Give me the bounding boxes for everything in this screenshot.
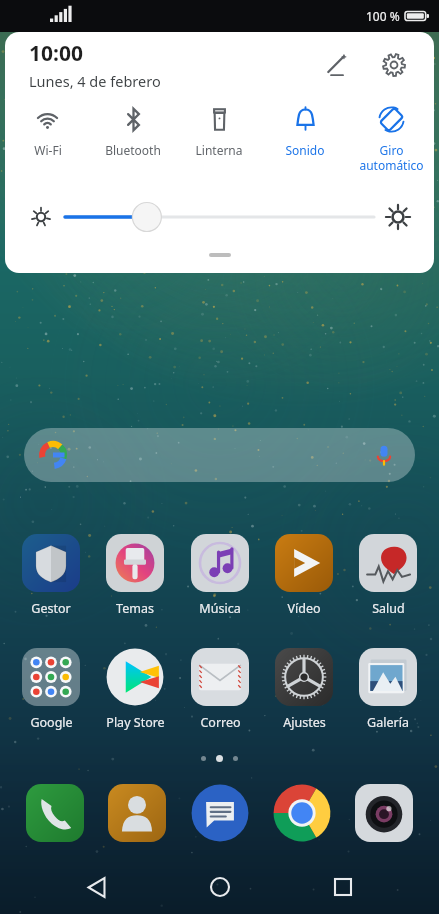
staticText: Google	[30, 714, 73, 731]
staticText: Wi-Fi	[34, 142, 62, 158]
staticText: Linterna	[195, 142, 243, 158]
button[interactable]: Teléfono	[22, 780, 88, 846]
staticText: Salud	[372, 600, 405, 617]
button[interactable]: Chrome	[269, 780, 335, 846]
button[interactable]: Música	[181, 532, 259, 619]
button[interactable]: Gestor	[12, 532, 90, 619]
staticText: Gestor	[31, 600, 71, 617]
staticText: Vídeo	[287, 600, 321, 617]
button[interactable]: Contactos	[104, 780, 170, 846]
staticText: 100 %	[366, 8, 400, 24]
staticText: Play Store	[106, 714, 165, 731]
button[interactable]: Brillo	[63, 197, 376, 237]
staticText: Ajustes	[283, 714, 326, 731]
button[interactable]: Inicio	[192, 860, 248, 914]
button[interactable]: Play Store	[96, 646, 174, 733]
staticText: Galería	[367, 714, 409, 731]
button[interactable]: Cámara	[351, 780, 417, 846]
button[interactable]: Salud	[349, 532, 427, 619]
button[interactable]: Wi-Fi	[5, 98, 90, 190]
button[interactable]: Correo	[181, 646, 259, 733]
button[interactable]: Mensajes	[187, 780, 253, 846]
staticText: Bluetooth	[105, 142, 161, 158]
button[interactable]: Bluetooth	[90, 98, 176, 190]
button[interactable]: Recientes	[315, 860, 371, 914]
button[interactable]: Giro automático	[348, 98, 434, 190]
button[interactable]: Editar	[315, 43, 359, 87]
button[interactable]: Google	[12, 646, 90, 733]
staticText: Sonido	[285, 142, 325, 158]
staticText: 10:00	[29, 39, 83, 68]
other: Búsqueda por voz	[371, 442, 397, 468]
button[interactable]: Temas	[96, 532, 174, 619]
button[interactable]: Ajustes	[265, 646, 343, 733]
staticText: Lunes, 4 de febrero	[29, 71, 161, 91]
button[interactable]: Atrás	[68, 860, 124, 914]
staticText: Música	[199, 600, 241, 617]
button[interactable]: Galería	[349, 646, 427, 733]
staticText: Giro automático	[359, 142, 424, 173]
staticText: Correo	[200, 714, 241, 731]
staticText: Temas	[116, 600, 154, 617]
button[interactable]: Búsqueda por voz	[24, 428, 415, 482]
button[interactable]: Ajustes	[372, 43, 416, 87]
button[interactable]: Sonido	[262, 98, 348, 190]
button[interactable]: Vídeo	[265, 532, 343, 619]
button[interactable]: Linterna	[176, 98, 262, 190]
